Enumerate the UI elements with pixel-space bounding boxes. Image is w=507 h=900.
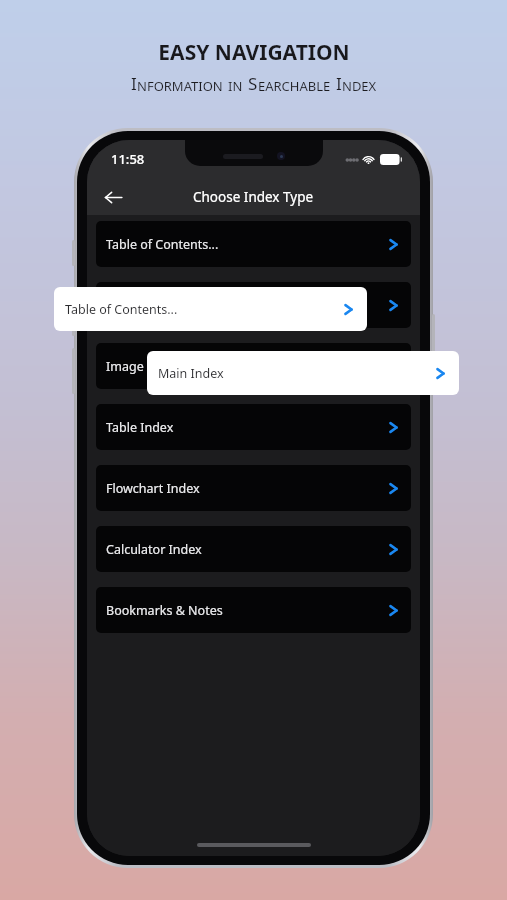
- staticText: Main Index: [158, 365, 224, 382]
- staticText: I: [131, 72, 137, 95]
- button[interactable]: Bookmarks & Notes: [96, 587, 411, 633]
- staticText: Table of Contents...: [65, 301, 178, 318]
- staticText: Image Index: [106, 358, 180, 375]
- button[interactable]: [96, 282, 411, 328]
- button[interactable]: Table of Contents...: [54, 287, 367, 331]
- staticText: Flowchart Index: [106, 480, 200, 497]
- staticText: NFORMATION: [137, 77, 223, 95]
- button[interactable]: Table Index: [96, 404, 411, 450]
- staticText: Table of Contents...: [106, 236, 219, 253]
- button[interactable]: Flowchart Index: [96, 465, 411, 511]
- staticText: Table Index: [106, 419, 174, 436]
- staticText: S: [248, 72, 258, 95]
- staticText: NDEX: [342, 77, 377, 95]
- staticText: Calculator Index: [106, 541, 202, 558]
- button[interactable]: Calculator Index: [96, 526, 411, 572]
- staticText: I: [336, 72, 342, 95]
- staticText: EASY NAVIGATION: [158, 38, 350, 67]
- button[interactable]: Back: [97, 181, 129, 213]
- staticText: EARCHABLE: [258, 77, 331, 95]
- staticText: 11:58: [111, 150, 145, 168]
- staticText: IN: [228, 77, 243, 95]
- staticText: Choose Index Type: [193, 188, 314, 206]
- button[interactable]: Image Index: [96, 343, 411, 389]
- button[interactable]: Table of Contents...: [96, 221, 411, 267]
- staticText: Bookmarks & Notes: [106, 602, 223, 619]
- button[interactable]: Main Index: [147, 351, 459, 395]
